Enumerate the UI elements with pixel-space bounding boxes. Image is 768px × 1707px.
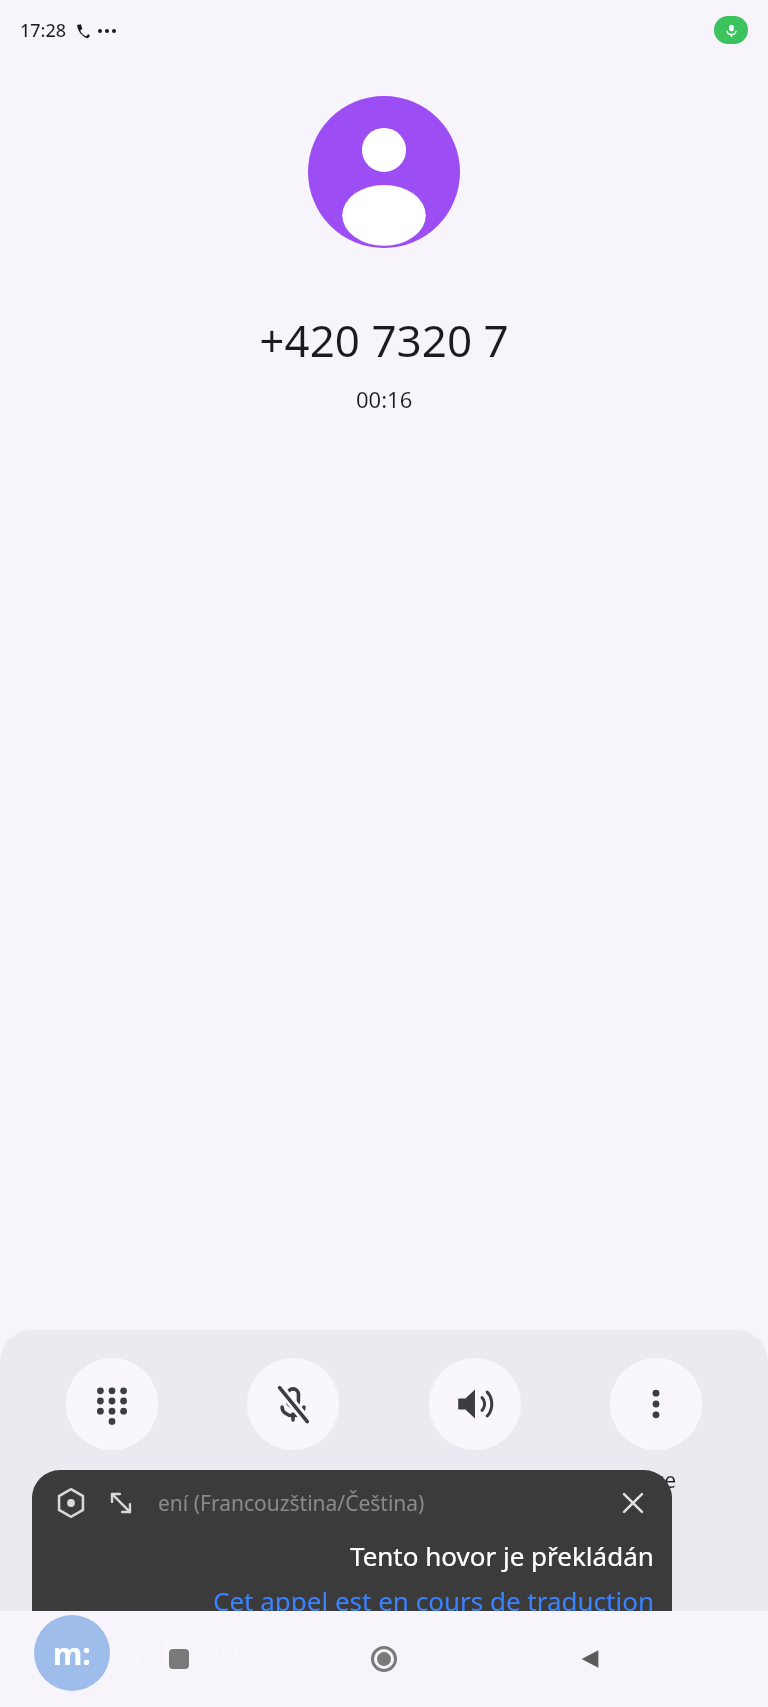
button[interactable]: Back: [563, 1632, 617, 1686]
staticText: Ztlumit: [258, 1466, 329, 1495]
button[interactable]: Expand: [106, 1488, 136, 1518]
button[interactable]: Ztlumit: [213, 1358, 373, 1495]
staticText: Více: [636, 1466, 676, 1495]
button[interactable]: Microphone active: [714, 16, 748, 44]
staticText: Cet appel est en cours de traduction: [213, 1583, 654, 1611]
button[interactable]: Recents: [152, 1632, 206, 1686]
staticText: mobilenet.cz: [110, 1630, 314, 1676]
button[interactable]: End call: [336, 1495, 432, 1591]
button[interactable]: Close: [616, 1486, 650, 1520]
button[interactable]: Reproduktor: [395, 1358, 555, 1495]
staticText: m:: [53, 1633, 91, 1674]
button[interactable]: Klávesnice: [32, 1358, 192, 1495]
button[interactable]: Translation settings: [54, 1486, 88, 1520]
button[interactable]: Více: [576, 1358, 736, 1495]
button[interactable]: Home: [357, 1632, 411, 1686]
staticText: +420 7320 7: [259, 310, 509, 370]
staticText: 17:28: [20, 18, 67, 43]
staticText: Reproduktor: [413, 1466, 538, 1495]
staticText: 00:16: [356, 384, 413, 414]
staticText: Tento hovor je překládán: [350, 1538, 654, 1573]
staticText: ení (Francouzština/Čeština): [158, 1489, 616, 1518]
staticText: Klávesnice: [60, 1466, 164, 1495]
